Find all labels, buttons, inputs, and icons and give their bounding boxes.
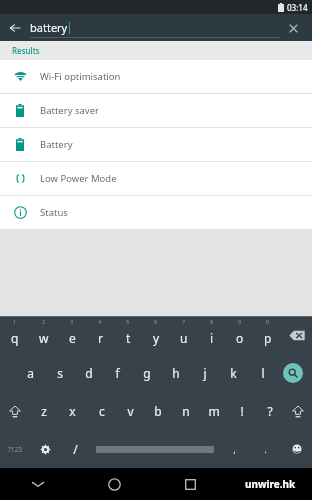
button[interactable]: 2 [29,317,58,354]
button[interactable]: Battery saver [0,94,312,128]
staticText: 03:14 [287,2,308,13]
staticText: z [41,403,47,419]
staticText: g [143,365,151,381]
button[interactable]: Backspace [282,317,312,354]
staticText: l [261,365,265,381]
staticText: v [127,403,134,419]
button[interactable]: m [200,392,228,430]
button[interactable]: Battery [0,128,312,162]
button[interactable]: Settings [30,430,60,468]
button[interactable]: b [144,392,172,430]
staticText: , [233,444,236,455]
button[interactable]: Hide keyboard [0,468,76,500]
button[interactable]: ? [256,392,284,430]
button[interactable]: Status [0,196,312,229]
staticText: p [264,330,272,346]
button[interactable]: 3 [58,317,86,354]
button[interactable]: Search [277,354,309,392]
staticText: ?123 [8,445,22,454]
staticText: b [154,403,162,419]
button[interactable]: v [116,392,144,430]
staticText: u [180,330,188,346]
button[interactable]: Clear search [280,15,306,41]
staticText: k [230,365,237,381]
button[interactable]: 4 [86,317,114,354]
button[interactable]: c [87,392,116,430]
staticText: c [99,403,105,419]
button[interactable]: Low Power Mode [0,162,312,196]
button[interactable]: 5 [114,317,142,354]
staticText: x [69,403,76,419]
staticText: Battery saver [40,104,99,117]
staticText: y [153,330,160,346]
button[interactable]: k [219,354,248,392]
staticText: f [115,365,120,381]
staticText: w [39,330,49,346]
button[interactable]: Space [91,430,219,468]
button[interactable]: s [45,354,74,392]
button[interactable]: 9 [226,317,254,354]
button[interactable]: Emoji [281,430,312,468]
button[interactable]: a [16,354,45,392]
staticText: a [27,365,34,381]
staticText: 0 [266,318,270,325]
staticText: Status [40,206,68,219]
staticText: 8 [210,318,214,325]
button[interactable]: z [29,392,58,430]
staticText: Wi-Fi optimisation [40,70,121,83]
staticText: unwire.hk [245,477,296,491]
staticText: r [98,330,103,346]
staticText: 2 [42,318,46,325]
button[interactable]: ! [228,392,256,430]
staticText: j [203,365,207,381]
button[interactable]: Recent apps [152,468,228,500]
button[interactable]: . [250,430,281,468]
button[interactable]: 0 [254,317,282,354]
staticText: q [11,330,19,346]
button[interactable]: 6 [142,317,170,354]
staticText: i [210,330,214,346]
staticText: . [264,444,267,455]
button[interactable]: x [58,392,87,430]
staticText: m [208,403,220,419]
staticText: 6 [154,318,158,325]
staticText: battery [30,20,68,35]
staticText: ! [240,403,244,419]
staticText: 4 [98,318,102,325]
staticText: Battery [40,138,73,151]
button[interactable]: f [103,354,132,392]
staticText: 1 [13,318,17,325]
staticText: n [182,403,190,419]
staticText: Results [12,45,40,56]
button[interactable]: , [219,430,250,468]
button[interactable]: Home [76,468,152,500]
staticText: 3 [70,318,74,325]
staticText: t [126,330,131,346]
button[interactable]: d [74,354,103,392]
button[interactable]: Shift [284,392,312,430]
staticText: 5 [126,318,130,325]
button[interactable]: j [190,354,219,392]
staticText: / [73,441,78,457]
button[interactable]: n [172,392,200,430]
staticText: 9 [238,318,242,325]
button[interactable]: 1 [0,317,29,354]
button[interactable]: l [248,354,277,392]
staticText: h [172,365,180,381]
staticText: o [236,330,244,346]
button[interactable]: 8 [198,317,226,354]
button[interactable]: 7 [170,317,198,354]
button[interactable]: Back [0,14,30,41]
staticText: ? [267,403,273,419]
button[interactable]: g [132,354,161,392]
staticText: s [57,365,63,381]
staticText: Low Power Mode [40,172,117,185]
button[interactable]: / [60,430,91,468]
button[interactable]: h [161,354,190,392]
button[interactable]: Shift [0,392,29,430]
staticText: 7 [182,318,186,325]
staticText: d [85,365,93,381]
button[interactable]: Wi-Fi optimisation [0,60,312,94]
staticText: e [69,330,76,346]
button[interactable]: ?123 [0,430,30,468]
